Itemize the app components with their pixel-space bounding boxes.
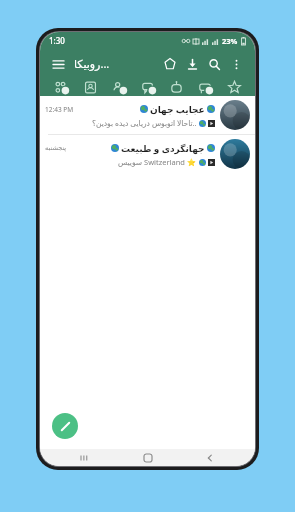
button[interactable]: پنجشنبه — [40, 135, 255, 173]
staticText: سوییس Switzerland ⭐ — [118, 157, 197, 167]
staticText: عجایب جهان — [150, 103, 205, 115]
staticText: 23% — [222, 36, 238, 46]
button[interactable]: Search — [203, 53, 225, 75]
staticText: 12:43 PM — [45, 105, 74, 114]
staticText: 1:30 — [49, 35, 65, 46]
button[interactable]: Rubino — [159, 53, 181, 75]
staticText: تاحالا اتوبوس دریایی دیده بودین؟.. — [92, 118, 197, 128]
button[interactable]: 12:43 PM — [40, 96, 255, 134]
button[interactable]: Channels — [193, 78, 217, 96]
button[interactable]: All chats — [49, 78, 73, 96]
button[interactable]: Home — [131, 449, 165, 466]
button[interactable]: New message — [52, 413, 78, 439]
staticText: پنجشنبه — [45, 144, 67, 152]
button[interactable]: Chats — [136, 78, 160, 96]
button[interactable]: Favourites — [222, 78, 246, 96]
staticText: جهانگردی و طبیعت — [121, 142, 205, 154]
button[interactable]: Back — [193, 449, 227, 466]
button[interactable]: Downloads — [181, 53, 203, 75]
button[interactable]: Menu — [48, 54, 68, 74]
button[interactable]: Bots — [164, 78, 188, 96]
staticText: روبیکا... — [74, 56, 110, 71]
button[interactable]: More options — [225, 53, 247, 75]
button[interactable]: Friends — [107, 78, 131, 96]
button[interactable]: Recents — [68, 449, 102, 466]
button[interactable]: Contacts — [78, 78, 102, 96]
